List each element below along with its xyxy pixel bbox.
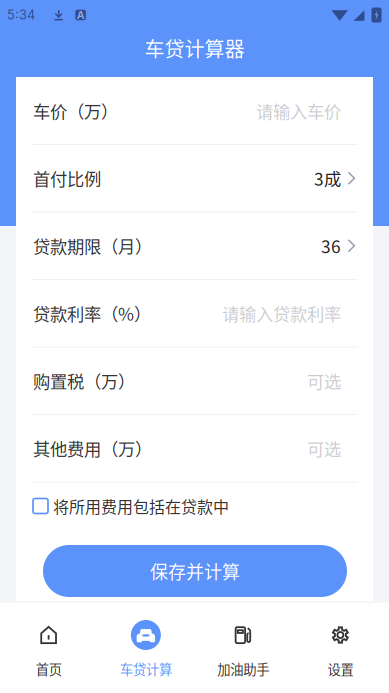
button[interactable]: 加油助手 — [194, 603, 292, 693]
button[interactable]: 其他费用（万） — [16, 414, 373, 482]
button[interactable]: 设置 — [292, 603, 389, 693]
button[interactable]: 购置税（万） — [16, 347, 373, 414]
staticText: 请输入车价 — [256, 98, 341, 123]
staticText: 贷款期限（月） — [33, 233, 152, 258]
button[interactable]: 车价（万） — [16, 77, 373, 144]
staticText: 车贷计算 — [120, 659, 172, 678]
staticText: 车价（万） — [33, 98, 118, 123]
button[interactable]: 贷款利率（%） — [16, 279, 373, 347]
staticText: 3成 — [314, 166, 341, 191]
button[interactable]: 首页 — [0, 603, 97, 693]
staticText: 可选 — [307, 368, 341, 393]
staticText: 贷款利率（%） — [33, 301, 151, 326]
staticText: 设置 — [327, 659, 353, 678]
staticText: A — [77, 8, 85, 21]
button[interactable]: 将所用费用包括在贷款中 — [16, 487, 373, 525]
button[interactable]: 贷款期限（月） — [16, 212, 373, 279]
staticText: 36 — [321, 233, 341, 258]
staticText: 购置税（万） — [33, 368, 135, 393]
staticText: 首付比例 — [33, 166, 101, 191]
staticText: 加油助手 — [217, 659, 269, 678]
staticText: 车贷计算器 — [144, 33, 244, 62]
button[interactable]: 保存并计算 — [43, 545, 347, 597]
button[interactable]: 车贷计算 — [97, 603, 194, 693]
staticText: 其他费用（万） — [33, 436, 152, 461]
staticText: 首页 — [36, 659, 62, 678]
staticText: 保存并计算 — [150, 558, 240, 584]
staticText: 5:34 — [7, 7, 35, 23]
button[interactable]: 首付比例 — [16, 144, 373, 212]
staticText: 可选 — [307, 436, 341, 461]
staticText: 请输入贷款利率 — [222, 301, 341, 326]
staticText: 将所用费用包括在贷款中 — [53, 494, 229, 518]
